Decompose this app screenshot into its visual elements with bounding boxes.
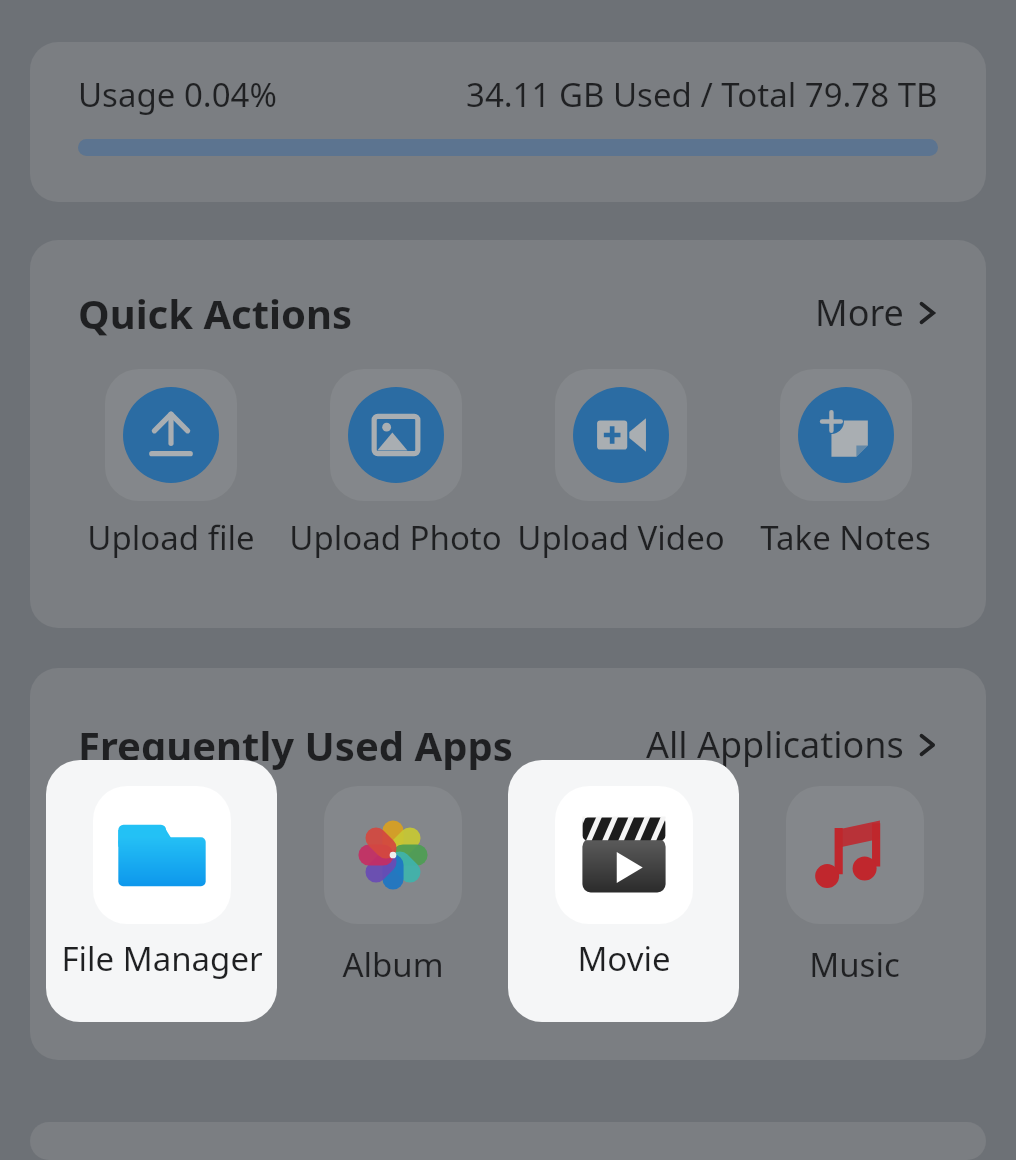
button[interactable]: File Manager bbox=[46, 760, 277, 1022]
button[interactable]: Music bbox=[739, 773, 970, 987]
staticText: Album bbox=[342, 942, 444, 987]
staticText: Music bbox=[809, 942, 900, 987]
staticText: Upload Video bbox=[517, 515, 725, 560]
staticText: All Applications bbox=[646, 720, 904, 769]
staticText: Frequently Used Apps bbox=[78, 718, 513, 772]
button[interactable]: Upload file bbox=[58, 369, 283, 560]
button[interactable]: Take Notes bbox=[733, 369, 958, 560]
staticText: Take Notes bbox=[760, 515, 931, 560]
button[interactable]: More bbox=[811, 284, 942, 341]
staticText: Usage 0.04% bbox=[78, 72, 277, 117]
button[interactable]: Upload Video bbox=[508, 369, 733, 560]
staticText: 34.11 GB Used / Total 79.78 TB bbox=[466, 72, 938, 117]
staticText: File Manager bbox=[61, 936, 263, 981]
staticText: Quick Actions bbox=[78, 286, 353, 340]
button[interactable]: Movie bbox=[508, 760, 739, 1022]
staticText: Upload file bbox=[87, 515, 255, 560]
button[interactable]: Upload Photo bbox=[283, 369, 508, 560]
staticText: Upload Photo bbox=[289, 515, 502, 560]
button[interactable]: All Applications bbox=[642, 716, 942, 773]
button[interactable]: Album bbox=[277, 773, 508, 987]
staticText: More bbox=[815, 288, 904, 337]
staticText: Movie bbox=[577, 936, 671, 981]
